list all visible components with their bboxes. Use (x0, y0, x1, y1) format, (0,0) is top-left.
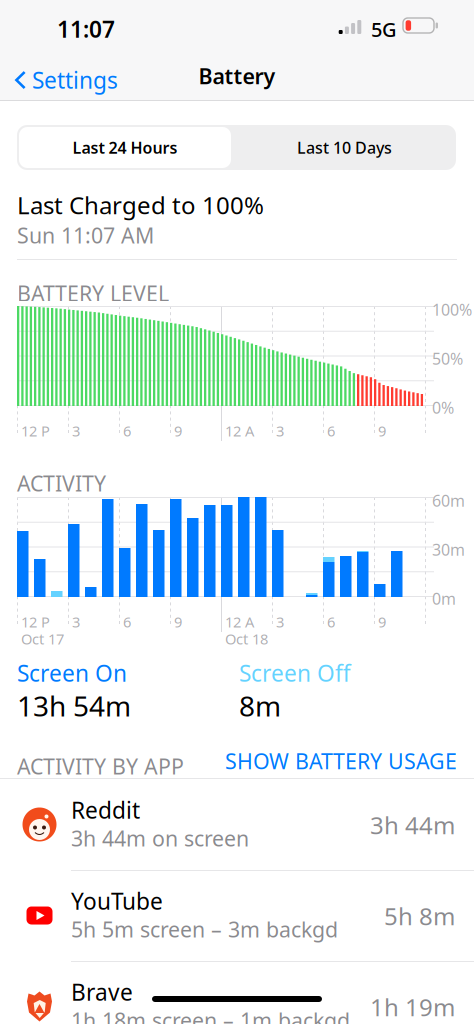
staticText: 6 (327, 612, 335, 631)
staticText: SHOW BATTERY USAGE (225, 747, 457, 775)
staticText: 11:07 (57, 14, 115, 44)
staticText: YouTube (71, 886, 163, 916)
staticText: Last 24 Hours (72, 137, 177, 158)
staticText: 3 (72, 421, 80, 440)
staticText: 9 (174, 612, 182, 631)
staticText: 5G (371, 16, 397, 43)
staticText: Screen On (17, 658, 127, 688)
staticText: 3h 44m (370, 809, 455, 841)
staticText: BATTERY LEVEL (17, 279, 169, 307)
staticText: Sun 11:07 AM (17, 221, 154, 249)
staticText: 9 (378, 612, 386, 631)
staticText: Battery (198, 62, 275, 90)
staticText: Last Charged to 100% (17, 189, 264, 221)
staticText: 12 P (21, 612, 50, 631)
staticText: 3 (276, 421, 284, 440)
button[interactable]: YouTube (0, 871, 474, 961)
staticText: Screen Off (239, 658, 351, 688)
staticText: 12 P (21, 421, 50, 440)
staticText: 12 A (225, 612, 254, 631)
staticText: 100% (432, 299, 472, 320)
button[interactable]: Last 24 Hours (17, 125, 233, 170)
staticText: 6 (123, 612, 131, 631)
staticText: 0% (432, 397, 454, 418)
button[interactable]: Brave (0, 962, 474, 1024)
staticText: 1h 19m (370, 991, 455, 1023)
staticText: Oct 18 (225, 629, 268, 648)
staticText: 3 (72, 612, 80, 631)
staticText: ACTIVITY BY APP (17, 752, 184, 780)
button[interactable]: SHOW BATTERY USAGE (225, 748, 457, 774)
staticText: 1h 18m screen – 1m backgd (71, 1006, 350, 1024)
staticText: 8m (239, 687, 281, 724)
staticText: Oct 17 (21, 629, 64, 648)
staticText: 9 (378, 421, 386, 440)
staticText: 5h 5m screen – 3m backgd (71, 915, 338, 943)
staticText: 9 (174, 421, 182, 440)
staticText: Brave (71, 977, 133, 1007)
staticText: Last 10 Days (297, 137, 392, 158)
staticText: 13h 54m (17, 687, 131, 724)
staticText: 6 (123, 421, 131, 440)
staticText: Reddit (71, 795, 140, 825)
staticText: 3h 44m on screen (71, 824, 249, 852)
button[interactable]: Settings (0, 53, 130, 107)
staticText: ACTIVITY (17, 469, 106, 497)
staticText: 50% (432, 348, 463, 369)
button[interactable]: Reddit (0, 780, 474, 870)
staticText: 6 (327, 421, 335, 440)
staticText: 0m (432, 588, 456, 609)
staticText: 60m (432, 490, 465, 511)
staticText: 30m (432, 539, 465, 560)
staticText: Settings (32, 65, 118, 95)
staticText: 5h 8m (384, 900, 455, 932)
button[interactable]: Last 10 Days (233, 125, 456, 170)
staticText: 3 (276, 612, 284, 631)
staticText: 12 A (225, 421, 254, 440)
